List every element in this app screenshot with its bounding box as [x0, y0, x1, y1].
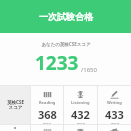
staticText: 433: [105, 107, 124, 122]
staticText: /550: [76, 122, 86, 124]
button[interactable]: Listening: [64, 86, 97, 124]
button[interactable]: [0, 125, 30, 131]
staticText: 368: [38, 107, 57, 122]
staticText: Listening: [71, 100, 90, 105]
staticText: 432: [71, 107, 90, 122]
staticText: Reading: [39, 100, 56, 105]
staticText: /550: [110, 122, 120, 124]
staticText: /1650: [81, 66, 97, 74]
button[interactable]: Listening: [64, 125, 97, 131]
button[interactable]: Writing: [98, 125, 131, 131]
staticText: 一次試験合格: [39, 11, 93, 22]
staticText: あなたの英検CSEスコア: [41, 41, 91, 47]
button[interactable]: 英検CSE スコア: [0, 86, 30, 124]
staticText: 英検CSE スコア: [7, 99, 24, 111]
staticText: 1233: [35, 50, 79, 76]
other: Listening: [76, 90, 85, 99]
button[interactable]: Reading: [31, 86, 63, 124]
button[interactable]: Writing: [98, 86, 131, 124]
other: Writing: [110, 129, 119, 131]
button[interactable]: Reading: [31, 125, 63, 131]
other: Listening: [76, 129, 85, 131]
button[interactable]: 一次試験合格: [0, 0, 131, 33]
staticText: /550: [42, 122, 52, 124]
other: Writing: [110, 90, 119, 99]
other: Reading: [43, 90, 52, 99]
staticText: Writing: [107, 100, 122, 105]
other: Reading: [43, 129, 52, 131]
